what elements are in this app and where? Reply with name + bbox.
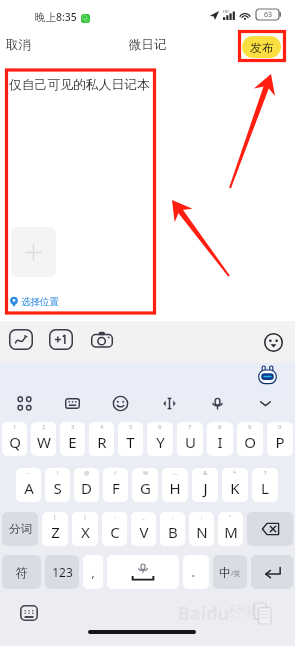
staticText: 晚上8:35 <box>35 10 77 24</box>
staticText: _ <box>142 513 145 521</box>
button[interactable]: 表情 <box>112 395 129 412</box>
staticText: 分词 <box>9 522 32 536</box>
button[interactable]: L <box>252 468 278 502</box>
staticText: 中 <box>219 565 231 580</box>
button[interactable]: 键盘设置 <box>64 395 81 412</box>
button[interactable]: J <box>192 468 218 502</box>
button[interactable]: S <box>45 468 70 502</box>
button[interactable]: 发布 <box>242 36 281 58</box>
button[interactable]: N <box>189 512 214 546</box>
button[interactable]: E <box>60 422 85 456</box>
staticText: P <box>275 432 285 452</box>
staticText: H <box>169 478 181 498</box>
button[interactable]: 表情 <box>264 333 283 352</box>
button[interactable]: 。 <box>183 555 209 589</box>
button[interactable]: V <box>131 512 156 546</box>
staticText: 6 <box>158 423 162 431</box>
staticText: ~ <box>27 469 31 477</box>
staticText: S <box>53 478 62 498</box>
button[interactable]: G <box>132 468 158 502</box>
staticText: * <box>233 469 237 477</box>
button[interactable]: 光标移动 <box>161 395 178 412</box>
staticText: M <box>224 522 238 542</box>
button[interactable]: A <box>16 468 41 502</box>
staticText: R <box>97 432 107 452</box>
button[interactable]: W <box>31 422 56 456</box>
button[interactable]: D <box>74 468 99 502</box>
button[interactable]: M <box>218 512 243 546</box>
button[interactable]: T <box>118 422 143 456</box>
staticText: 0 <box>278 423 282 431</box>
button[interactable]: U <box>177 422 203 456</box>
staticText: , <box>91 564 95 580</box>
button[interactable]: AI 助手 <box>258 365 277 385</box>
button[interactable]: 语音输入 <box>209 395 226 412</box>
staticText: Y <box>156 432 165 452</box>
button[interactable]: H <box>162 468 188 502</box>
button[interactable]: , <box>83 555 103 589</box>
staticText: A <box>24 478 34 498</box>
button[interactable]: R <box>89 422 114 456</box>
staticText: & <box>203 469 208 477</box>
button[interactable]: Q <box>2 422 27 456</box>
button[interactable]: 相机 <box>90 328 114 350</box>
button[interactable]: 更多功能 <box>16 395 33 412</box>
button[interactable]: 收起键盘 <box>257 395 274 412</box>
staticText: E <box>68 432 77 452</box>
button[interactable]: Z <box>42 512 68 546</box>
staticText: 4 <box>100 423 104 431</box>
button[interactable]: I <box>207 422 233 456</box>
staticText: 发布 <box>250 40 274 55</box>
staticText: Baidu <box>178 601 230 626</box>
button[interactable]: 回车 <box>251 555 293 589</box>
staticText: - <box>114 513 116 521</box>
staticText: V <box>139 522 149 542</box>
button[interactable]: 取消 <box>0 31 41 62</box>
button[interactable]: 删除 <box>247 512 293 546</box>
staticText: D <box>81 478 92 498</box>
staticText: 。 <box>191 565 202 579</box>
button[interactable]: K <box>222 468 248 502</box>
button[interactable]: B <box>160 512 185 546</box>
button[interactable]: 添加图片 <box>11 227 56 277</box>
staticText: Z <box>51 522 60 542</box>
staticText: 9 <box>248 423 252 431</box>
staticText: J <box>203 478 208 498</box>
button[interactable]: 空格 <box>107 555 179 589</box>
staticText: 经验 <box>229 603 259 622</box>
staticText: 123 <box>52 564 73 580</box>
staticText: HD <box>223 9 229 14</box>
button[interactable]: 心情 <box>9 329 33 350</box>
staticText: O <box>244 432 256 452</box>
button[interactable]: O <box>237 422 263 456</box>
button[interactable]: 分词 <box>2 512 38 546</box>
staticText: 符 <box>16 565 28 580</box>
staticText: Q <box>9 432 21 452</box>
button[interactable]: P <box>267 422 293 456</box>
staticText: 63 <box>264 10 273 20</box>
button[interactable]: X <box>72 512 98 546</box>
staticText: K <box>230 478 240 498</box>
button[interactable]: 选择位置 <box>10 296 59 308</box>
staticText: 微日记 <box>129 37 167 53</box>
staticText: ( <box>54 513 56 521</box>
button[interactable]: 123 <box>45 555 79 589</box>
button[interactable]: 键盘切换 <box>20 605 38 621</box>
staticText: ! <box>57 469 59 477</box>
button[interactable]: F <box>103 468 128 502</box>
staticText: B <box>168 522 178 542</box>
button[interactable]: 中 <box>213 555 247 589</box>
staticText: ) <box>84 513 86 521</box>
button[interactable]: 符 <box>2 555 41 589</box>
staticText: T <box>126 432 135 452</box>
button[interactable]: C <box>102 512 127 546</box>
button[interactable]: Y <box>147 422 173 456</box>
button[interactable]: 打卡 <box>49 329 73 350</box>
staticText: @ <box>84 469 90 477</box>
staticText: F <box>112 478 120 498</box>
staticText: N <box>196 522 208 542</box>
staticText: W <box>37 432 51 452</box>
staticText: 5 <box>129 423 133 431</box>
staticText: 1 <box>13 423 17 431</box>
staticText: : <box>172 513 174 521</box>
